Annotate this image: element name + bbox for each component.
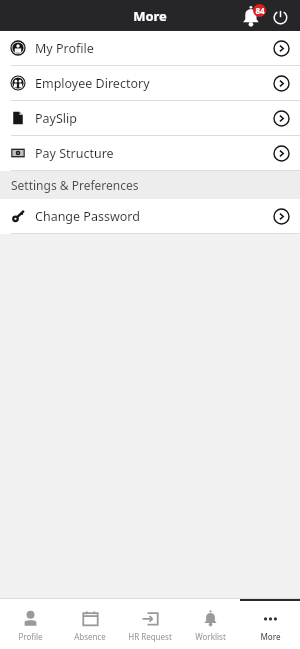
staticText: Worklist [195, 631, 226, 642]
staticText: HR Request [128, 631, 172, 642]
button[interactable]: Change Password [0, 199, 300, 233]
button[interactable]: Worklist [180, 599, 240, 649]
staticText: Pay Structure [35, 145, 114, 162]
staticText: PaySlip [35, 110, 77, 127]
staticText: Employee Directory [35, 75, 150, 92]
staticText: 84 [255, 5, 265, 16]
staticText: My Profile [35, 40, 94, 57]
button[interactable]: My Profile [0, 31, 300, 65]
staticText: Settings & Preferences [11, 177, 139, 193]
button[interactable]: Pay Structure [0, 136, 300, 170]
staticText: More [133, 7, 167, 25]
button[interactable]: PaySlip [0, 101, 300, 135]
button[interactable]: Log out [268, 4, 292, 28]
button[interactable]: Employee Directory [0, 66, 300, 100]
staticText: More [260, 631, 281, 642]
button[interactable]: Absence [60, 599, 120, 649]
button[interactable]: More [240, 599, 300, 649]
button[interactable]: Profile [0, 599, 60, 649]
staticText: Profile [18, 631, 43, 642]
staticText: Change Password [35, 208, 140, 225]
button[interactable]: Notifications, 84 unread [240, 3, 266, 29]
staticText: Absence [74, 631, 106, 642]
button[interactable]: HR Request [120, 599, 180, 649]
